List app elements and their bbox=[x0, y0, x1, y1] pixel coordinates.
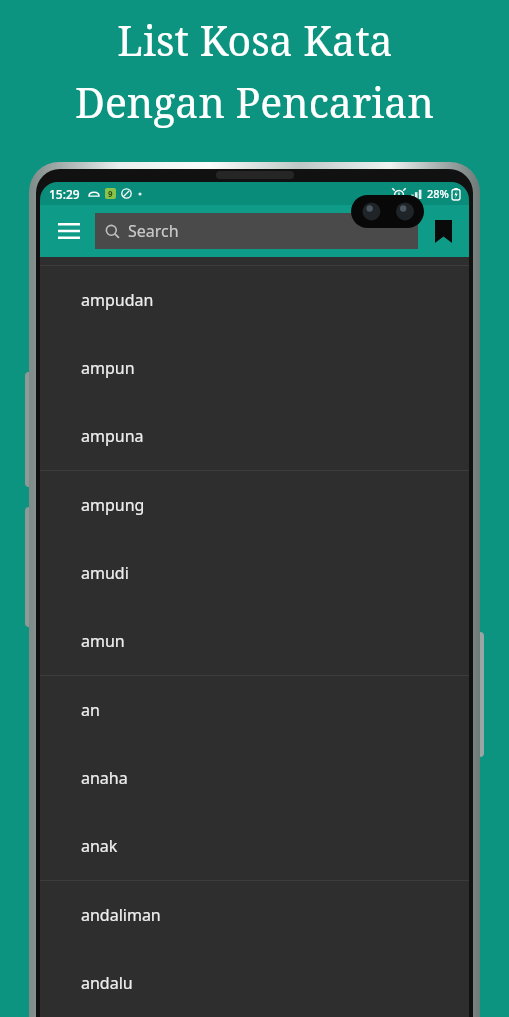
button[interactable]: Search bbox=[95, 213, 418, 249]
button[interactable]: ampung bbox=[40, 471, 469, 539]
button[interactable]: andaliman bbox=[40, 881, 469, 949]
button[interactable]: anak bbox=[40, 812, 469, 880]
staticText: ampung bbox=[81, 494, 145, 516]
staticText: Search bbox=[128, 220, 179, 242]
button[interactable]: ampuna bbox=[40, 402, 469, 470]
staticText: 9 bbox=[108, 188, 113, 199]
button[interactable]: andalu bbox=[40, 949, 469, 1017]
button[interactable]: an bbox=[40, 676, 469, 744]
staticText: anak bbox=[81, 835, 118, 857]
staticText: 15:29 bbox=[49, 186, 80, 202]
staticText: List Kosa Kata bbox=[117, 12, 393, 68]
staticText: amudi bbox=[81, 562, 129, 584]
staticText: ampun bbox=[81, 357, 135, 379]
button[interactable]: amun bbox=[40, 607, 469, 675]
staticText: ampudan bbox=[81, 289, 154, 311]
button[interactable]: ampun bbox=[40, 334, 469, 402]
staticText: 28% bbox=[427, 186, 449, 201]
staticText: an bbox=[81, 699, 100, 721]
button[interactable]: anaha bbox=[40, 744, 469, 812]
staticText: andaliman bbox=[81, 904, 161, 926]
button[interactable]: ampudan bbox=[40, 266, 469, 334]
button[interactable]: Open navigation menu bbox=[49, 211, 89, 251]
button[interactable]: amudi bbox=[40, 539, 469, 607]
staticText: ampuna bbox=[81, 425, 144, 447]
staticText: amun bbox=[81, 630, 125, 652]
staticText: anaha bbox=[81, 767, 128, 789]
staticText: Dengan Pencarian bbox=[75, 74, 434, 130]
staticText: andalu bbox=[81, 972, 133, 994]
button[interactable]: Bookmarks bbox=[426, 214, 460, 248]
